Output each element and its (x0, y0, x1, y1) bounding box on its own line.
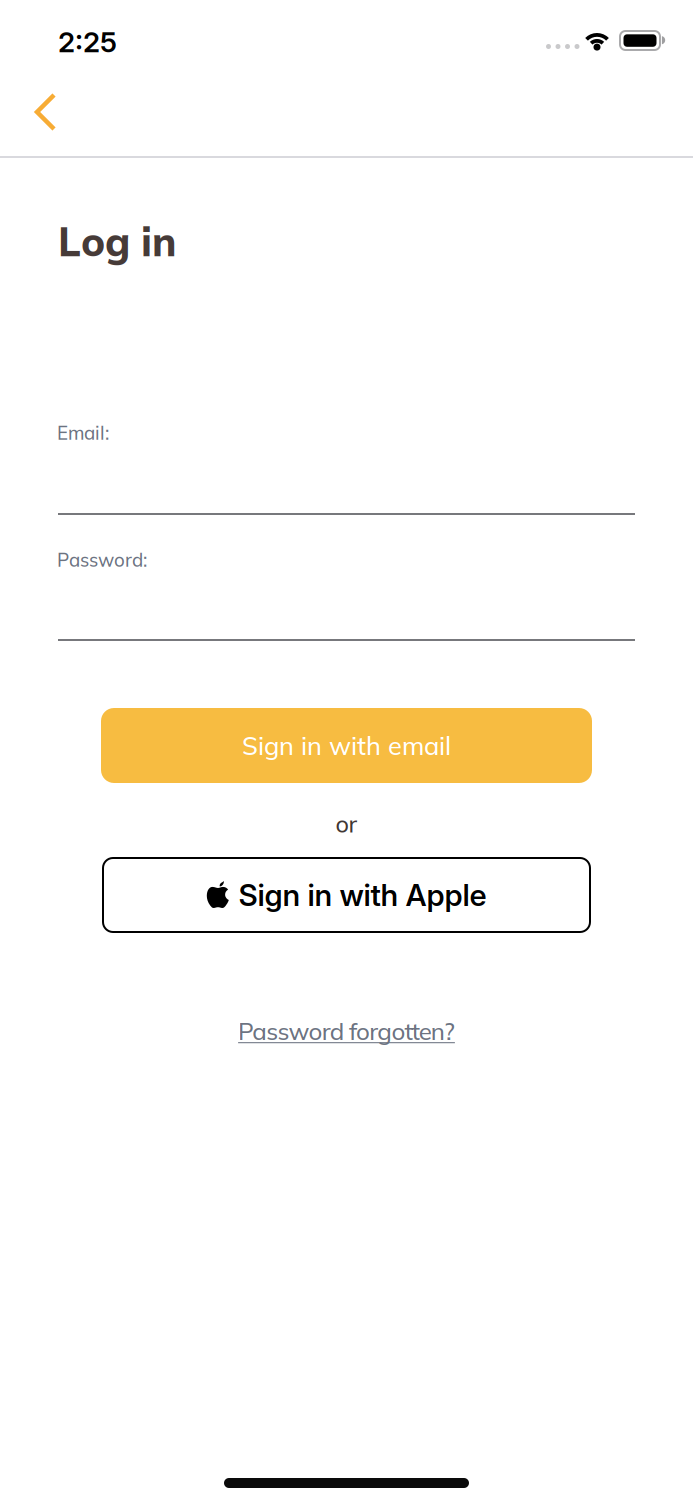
button[interactable]: Sign in with Apple (103, 858, 590, 932)
staticText: Password forgotten? (238, 1016, 455, 1046)
staticText: Sign in with email (242, 730, 451, 761)
staticText: 2:25 (58, 25, 117, 59)
staticText: Log in (58, 216, 177, 266)
button[interactable]: Sign in with email (101, 708, 592, 783)
button[interactable]: Back (0, 0, 90, 145)
staticText: or (335, 809, 357, 838)
staticText: Email: (57, 421, 109, 444)
staticText: Password: (57, 548, 147, 571)
button[interactable]: Email (58, 460, 635, 515)
button[interactable]: Password forgotten? (0, 0, 693, 1046)
staticText: Sign in with Apple (238, 877, 486, 913)
button[interactable]: Password (58, 586, 635, 641)
